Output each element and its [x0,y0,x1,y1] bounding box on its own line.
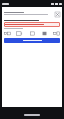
button[interactable]: Insert image [16,31,23,36]
button[interactable]: Close [55,12,60,17]
button[interactable]: Layout [29,31,36,36]
button[interactable]: More options [53,31,60,36]
button[interactable]: Text size [4,31,11,36]
button[interactable] [4,38,60,43]
button[interactable]: Selected layout [41,31,48,36]
button[interactable] [4,22,60,27]
